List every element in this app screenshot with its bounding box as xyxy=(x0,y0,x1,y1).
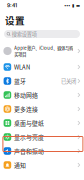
staticText: WLAN xyxy=(14,63,30,71)
button[interactable]: 显示与亮度 xyxy=(0,130,84,144)
staticText: 蓝牙 xyxy=(14,77,26,85)
button[interactable]: 桌面与壁纸 xyxy=(0,116,84,130)
button[interactable]: WLAN xyxy=(0,60,84,74)
staticText: 通知 xyxy=(14,161,26,169)
staticText: 已关闭 xyxy=(61,77,76,85)
button[interactable]: Apple 账户、iCloud、媒体与购买项目 xyxy=(0,42,84,60)
button[interactable]: 蓝牙 xyxy=(0,74,84,88)
staticText: 设置 xyxy=(5,13,25,27)
staticText: 声音和振动 xyxy=(14,147,44,155)
staticText: 更多连接 xyxy=(14,105,38,113)
staticText: 移动网络 xyxy=(14,91,38,99)
button[interactable]: 通知 xyxy=(0,158,84,172)
staticText: 9:41 xyxy=(7,2,17,8)
button[interactable]: 声音和振动 xyxy=(0,144,84,158)
staticText: ••• ▮ ▬ xyxy=(64,3,80,8)
staticText: 桌面与壁纸 xyxy=(14,119,44,127)
staticText: Apple 账户、iCloud、媒体与购买项目 xyxy=(14,45,73,57)
button[interactable]: 移动网络 xyxy=(0,88,84,102)
staticText: 显示与亮度 xyxy=(14,133,44,141)
staticText: 搜索设置项 xyxy=(12,30,37,38)
button[interactable]: 更多连接 xyxy=(0,102,84,116)
